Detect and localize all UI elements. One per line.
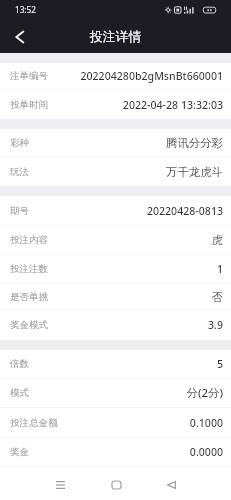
staticText: 0.0000 — [189, 445, 223, 459]
staticText: 20220428-0813 — [146, 204, 223, 218]
button[interactable]: 玩法 — [0, 157, 231, 186]
staticText: 奖金模式 — [10, 319, 48, 331]
button[interactable]: 注单编号 — [0, 63, 231, 89]
staticText: 虎 — [211, 233, 223, 247]
button[interactable]: 彩种 — [0, 129, 231, 156]
button[interactable]: 倍数 — [0, 350, 231, 378]
button[interactable]: 投注内容 — [0, 226, 231, 254]
staticText: 玩法 — [10, 166, 29, 178]
staticText: 模式 — [10, 387, 29, 399]
button[interactable]: 奖金 — [0, 438, 231, 466]
staticText: 投单时间 — [10, 99, 48, 111]
button[interactable]: Recent apps — [37, 476, 84, 494]
staticText: 期号 — [10, 205, 29, 217]
staticText: 0.1000 — [189, 416, 223, 430]
staticText: 1 — [216, 262, 223, 276]
staticText: 投注注数 — [10, 263, 48, 275]
button[interactable]: 投单时间 — [0, 90, 231, 119]
staticText: 否 — [211, 290, 223, 304]
button[interactable]: 模式 — [0, 379, 231, 407]
staticText: 奖金 — [10, 446, 29, 458]
staticText: 倍数 — [10, 358, 29, 370]
staticText: 投注总金额 — [10, 417, 58, 429]
staticText: 腾讯分分彩 — [166, 136, 223, 150]
staticText: 投注详情 — [90, 29, 142, 45]
button[interactable]: Home — [84, 476, 148, 494]
button[interactable]: 是否单挑 — [0, 284, 231, 309]
staticText: 3.9 — [207, 318, 223, 332]
staticText: 分(2分) — [186, 385, 223, 401]
staticText: 13:52 — [15, 4, 36, 15]
staticText: 是否单挑 — [10, 291, 48, 303]
staticText: 2022-04-28 13:32:03 — [122, 98, 223, 112]
button[interactable]: Back — [148, 476, 195, 494]
button[interactable]: 投注注数 — [0, 255, 231, 283]
staticText: 202204280b2gMsnBt660001 — [80, 69, 223, 83]
staticText: 彩种 — [10, 137, 29, 149]
button[interactable]: 奖金模式 — [0, 310, 231, 340]
staticText: 注单编号 — [10, 70, 48, 82]
button[interactable]: 投注总金额 — [0, 408, 231, 437]
staticText: 万千龙虎斗 — [166, 165, 223, 179]
button[interactable]: 期号 — [0, 196, 231, 225]
button[interactable]: Back — [5, 22, 35, 52]
staticText: 投注内容 — [10, 234, 48, 246]
staticText: 5 — [216, 357, 223, 371]
